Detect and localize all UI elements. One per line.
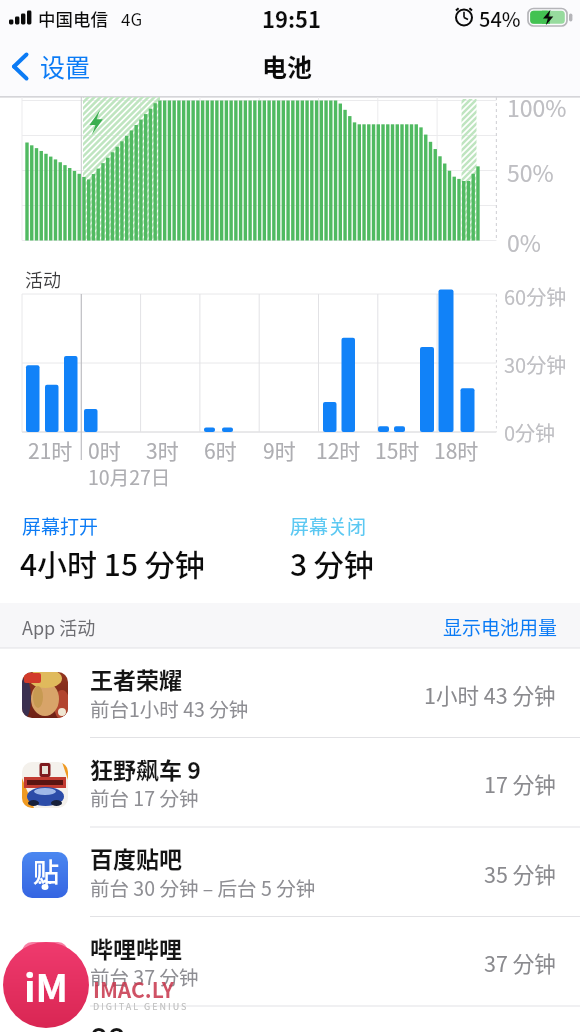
staticText: 4小时 15 分钟 [20,541,205,584]
staticText: QQ [90,1018,126,1032]
button[interactable] [0,917,580,1007]
button[interactable] [0,827,580,917]
staticText: 18时 [434,435,479,465]
staticText: 1小时 43 分钟 [424,679,556,710]
staticText: 中国电信 [38,6,108,31]
staticText: 3 分钟 [290,541,374,584]
staticText: 0% [507,225,541,258]
staticText: 百度贴吧 [90,841,182,874]
staticText: 贴 [33,852,60,890]
staticText: 100% [507,90,567,123]
staticText: 设置 [40,48,91,84]
staticText: 15时 [375,435,420,465]
staticText: 21时 [28,435,73,465]
button[interactable] [0,738,580,828]
staticText: 前台 30 分钟 – 后台 5 分钟 [90,873,316,901]
button[interactable] [0,648,580,738]
staticText: 活动 [25,266,61,292]
staticText: 9时 [263,435,296,465]
staticText: 屏幕打开 [22,512,99,540]
staticText: 35 分钟 [484,858,556,889]
staticText: 60分钟 [504,282,567,311]
staticText: iM [24,958,68,1013]
staticText: 0分钟 [504,418,556,447]
staticText: 前台 37 分钟 [90,962,199,990]
staticText: 54% [479,4,521,33]
staticText: 3时 [146,435,179,465]
staticText: 王者荣耀 [90,662,182,695]
staticText: 前台1小时 43 分钟 [90,694,249,722]
staticText: 50% [507,155,554,188]
staticText: 狂野飙车 9 [90,752,201,785]
staticText: DIGITAL GENIUS [93,1000,189,1013]
staticText: 12时 [316,435,361,465]
staticText: 前台 17 分钟 [90,783,199,811]
staticText: 37 分钟 [484,947,556,978]
button[interactable] [0,44,110,88]
button[interactable]: 显示电池用量 [158,608,558,646]
staticText: 电池 [262,48,313,84]
staticText: 哔哩哔哩 [90,931,182,964]
staticText: 显示电池用量 [443,613,558,641]
staticText: 30分钟 [504,350,567,379]
staticText: 4G [121,6,143,31]
staticText: 10月27日 [88,462,171,490]
staticText: 0时 [88,435,121,465]
staticText: 19:51 [262,2,322,34]
staticText: App 活动 [22,614,96,640]
staticText: 6时 [204,435,237,465]
staticText: IMAC.LY [93,974,174,1004]
staticText: 屏幕关闭 [290,512,367,540]
staticText: 17 分钟 [484,768,556,799]
